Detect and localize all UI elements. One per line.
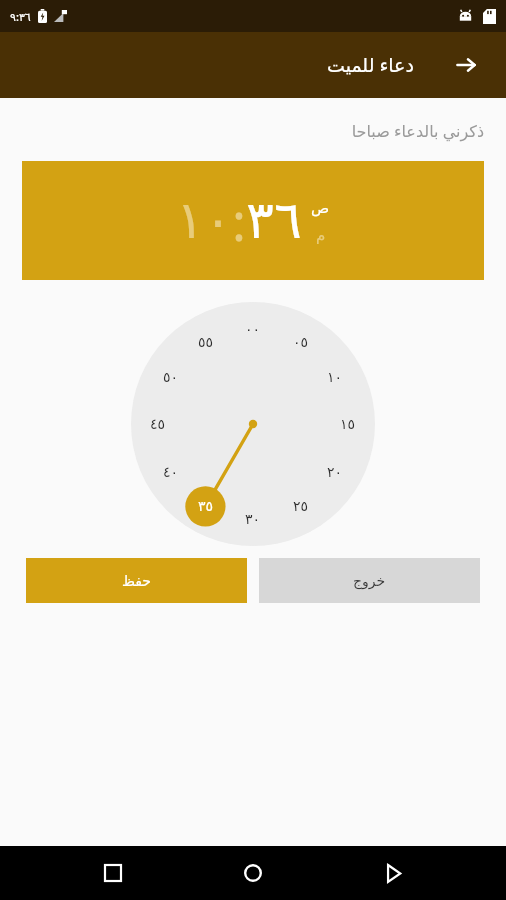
staticText: ٥٠ [163, 369, 179, 385]
staticText: ٥٥ [198, 334, 214, 350]
staticText: ٢٠ [327, 464, 343, 480]
button[interactable]: Back [366, 846, 420, 900]
staticText: ٣٥ [198, 498, 214, 514]
staticText: ٣٦ [246, 190, 302, 251]
staticText: ٠٠ [245, 321, 261, 337]
button[interactable]: Home [226, 846, 280, 900]
staticText: ذكرني بالدعاء صباحا [0, 120, 484, 142]
button[interactable]: حفظ [26, 558, 247, 603]
staticText: ١٠ [176, 190, 232, 251]
staticText: حفظ [122, 573, 152, 589]
button[interactable]: ١٠ [22, 161, 484, 280]
staticText: ٠٥ [293, 334, 309, 350]
staticText: ٤٠ [163, 464, 179, 480]
staticText: م [316, 226, 326, 243]
staticText: ٣٠ [245, 511, 261, 527]
staticText: : [232, 185, 246, 256]
staticText: خروج [353, 573, 386, 589]
staticText: ١٥ [340, 416, 356, 432]
button[interactable]: خروج [259, 558, 480, 603]
staticText: ٩:٣٦ [10, 9, 31, 24]
staticText: ١٠ [327, 369, 343, 385]
staticText: ٢٥ [293, 498, 309, 514]
staticText: ص [311, 199, 330, 216]
staticText: ٤٥ [150, 416, 166, 432]
button[interactable]: رجوع [444, 43, 488, 87]
button[interactable]: Recents [86, 846, 140, 900]
staticText: دعاء للميت [327, 52, 414, 78]
